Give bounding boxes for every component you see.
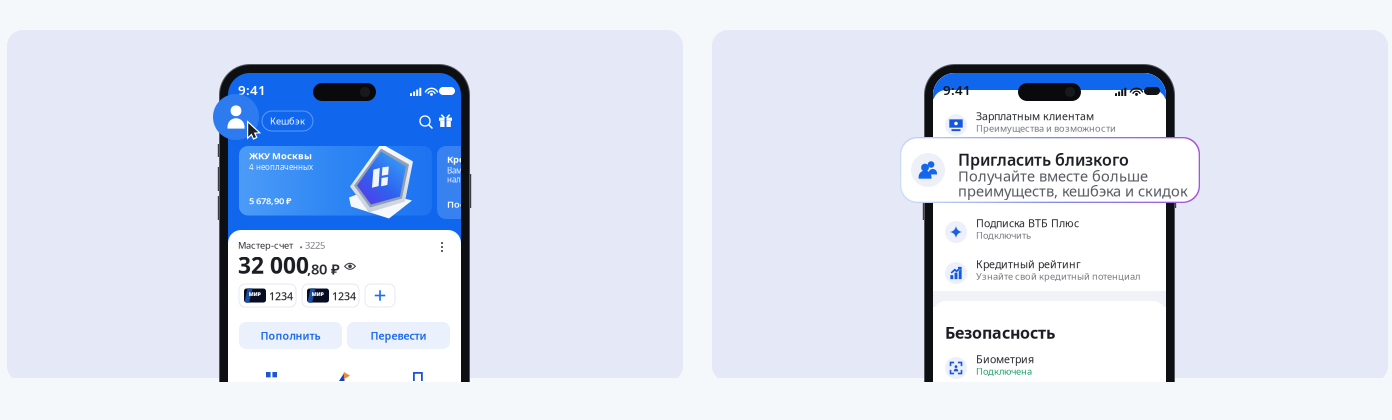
button[interactable]: Кред	[437, 146, 497, 219]
button[interactable]: Платежи	[339, 372, 350, 381]
button[interactable]: Подарки	[439, 114, 452, 127]
button[interactable]: МИР	[239, 284, 296, 307]
staticText: Пополнить	[260, 328, 320, 343]
button[interactable]: ЖКУ Москвы	[239, 146, 432, 219]
button[interactable]: Зарплатным клиентам	[945, 112, 1152, 142]
button[interactable]: Сервисы	[413, 372, 423, 381]
button[interactable]: Главная	[266, 372, 277, 381]
staticText: 5 678,90 ₽	[249, 194, 292, 207]
button[interactable]: Биометрия	[945, 355, 1152, 385]
staticText: Зарплатным клиентам	[976, 109, 1094, 123]
staticText: Получайте вместе больше	[958, 166, 1148, 185]
staticText: преимуществ, кешбэка и скидок	[958, 181, 1188, 200]
staticText: Преимущества и возможности	[976, 122, 1116, 134]
staticText: Кредитный рейтинг	[976, 257, 1081, 271]
staticText: Посм	[447, 198, 473, 210]
button[interactable]: Пополнить	[239, 322, 342, 349]
staticText: МИР	[249, 291, 261, 298]
staticText: 9:41	[943, 81, 971, 99]
button[interactable]: Ещё	[435, 239, 449, 255]
button[interactable]: Добавить карту	[365, 284, 395, 307]
staticText: Получайте вместе больше	[976, 163, 1094, 175]
staticText: 3225	[305, 239, 325, 251]
button[interactable]: Пригласить близкого	[945, 153, 1152, 183]
button[interactable]: Кредитный рейтинг	[945, 260, 1152, 290]
staticText: 4 неоплаченных	[249, 161, 313, 172]
button[interactable]: Подписка ВТБ Плюс	[945, 219, 1152, 249]
button[interactable]: МИР	[302, 284, 359, 307]
staticText: Вам д	[447, 165, 469, 176]
staticText: МИР	[312, 291, 324, 298]
staticText: 32 000	[238, 250, 309, 280]
button[interactable]: Кешбэк	[262, 111, 313, 131]
button[interactable]: Профиль	[213, 94, 259, 140]
staticText: Узнайте свой кредитный потенциал	[976, 270, 1140, 282]
staticText: ,80 ₽	[307, 259, 340, 278]
staticText: Подписка ВТБ Плюс	[976, 216, 1079, 230]
staticText: ЖКУ Москвы	[249, 149, 312, 162]
staticText: Кешбэк	[270, 115, 305, 127]
staticText: Перевести	[370, 328, 426, 343]
staticText: Пригласить близкого	[958, 149, 1129, 170]
staticText: Биометрия	[976, 352, 1034, 366]
staticText: 9:41	[238, 81, 266, 99]
staticText: 1234	[332, 289, 356, 303]
staticText: Безопасность	[945, 322, 1055, 343]
staticText: Кред	[447, 153, 470, 165]
staticText: Пригласить близкого	[976, 150, 1085, 164]
staticText: Подключить	[976, 229, 1031, 241]
staticText: Мастер-счет	[238, 239, 293, 251]
staticText: 1234	[269, 289, 293, 303]
staticText: Подключена	[976, 365, 1032, 377]
button[interactable]: Пригласить близкого	[900, 137, 1200, 203]
staticText: налич	[447, 174, 471, 185]
button[interactable]: Перевести	[347, 322, 450, 349]
button[interactable]: Поиск	[418, 114, 432, 128]
